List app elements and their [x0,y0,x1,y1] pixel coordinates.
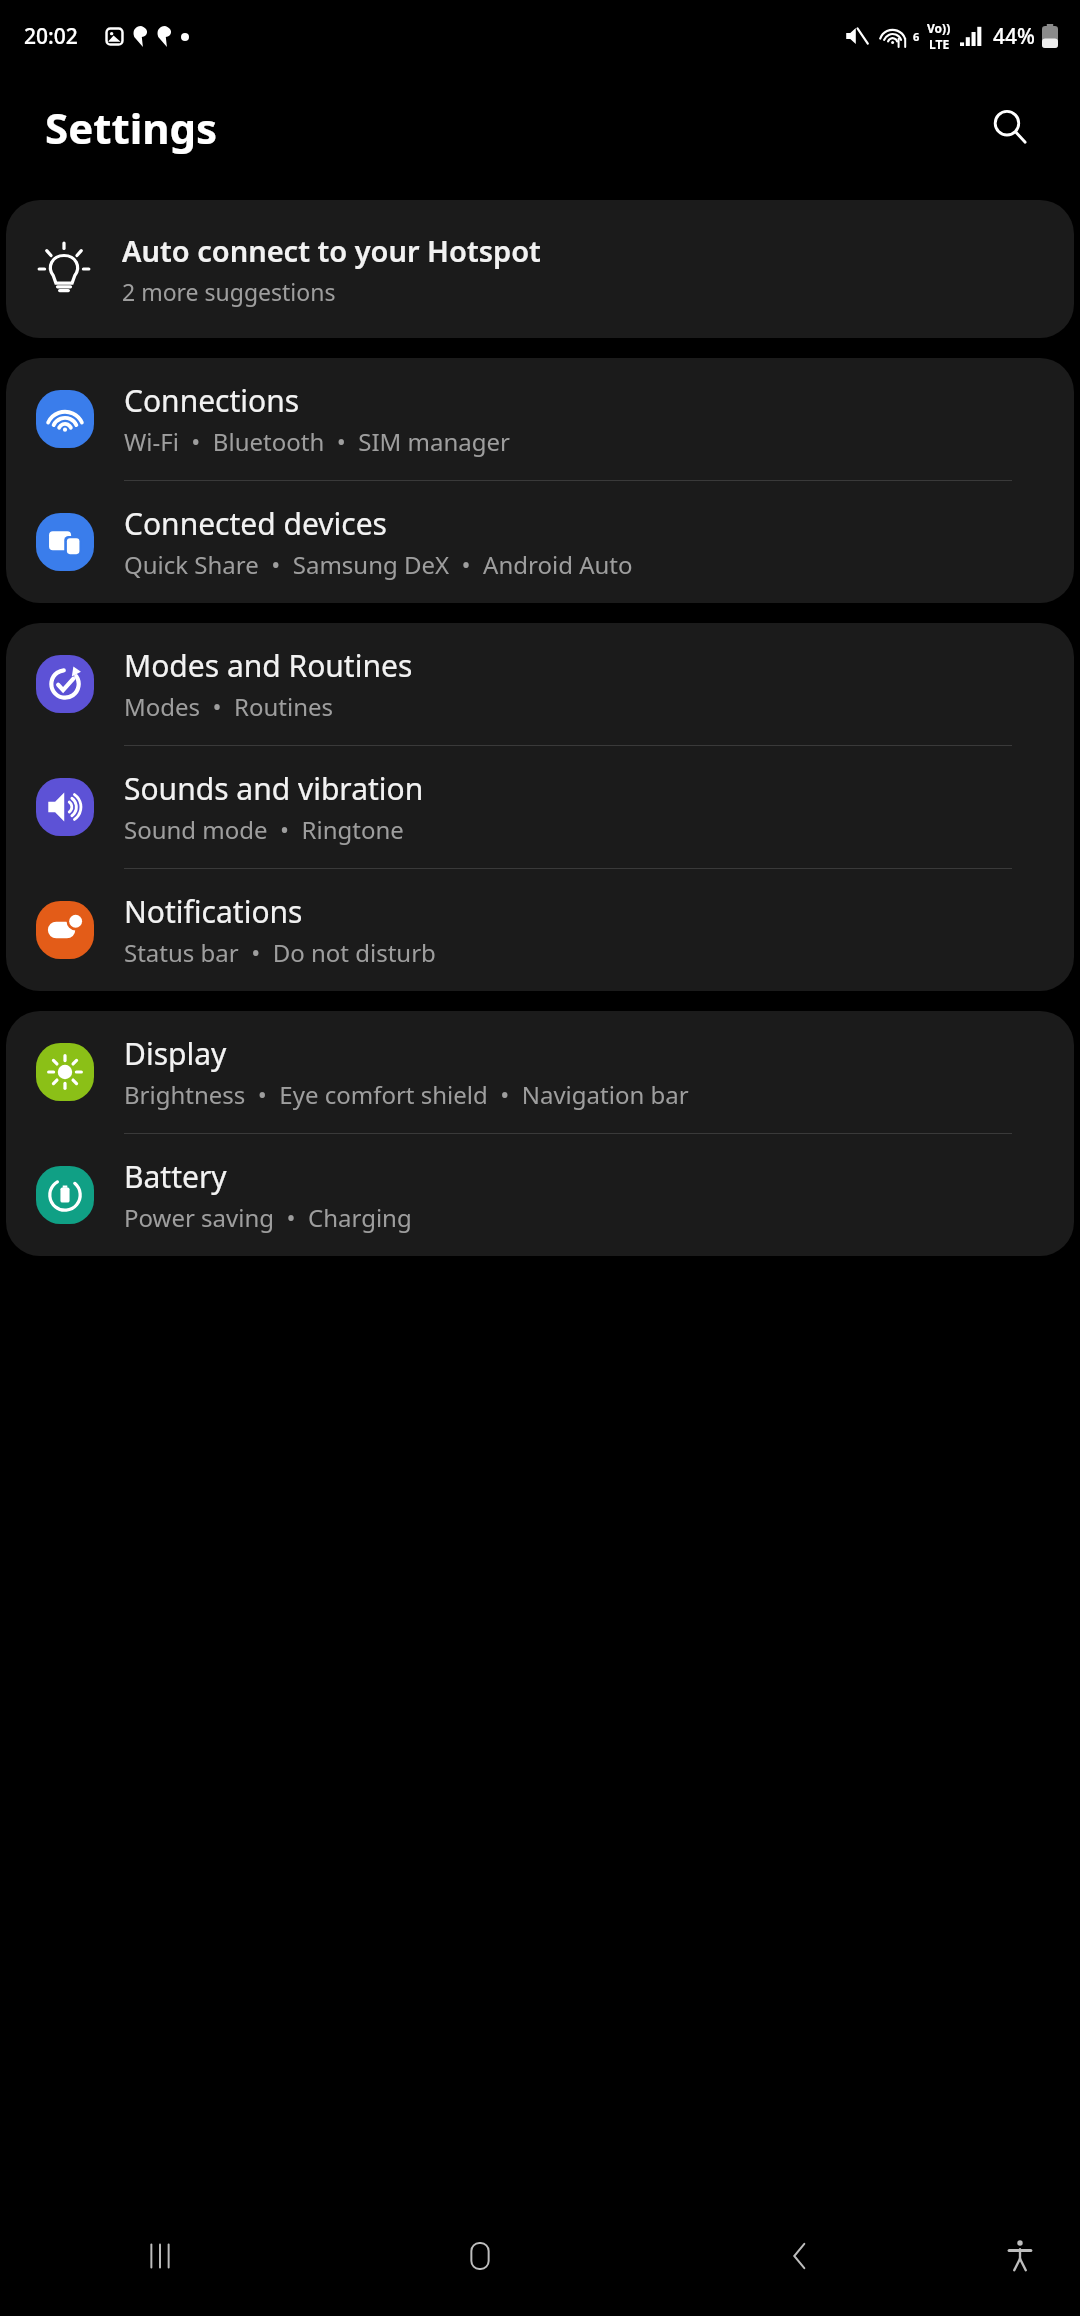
button[interactable]: Notifications [6,869,1074,991]
staticText: Battery [124,1156,227,1197]
button[interactable]: Sounds and vibration [6,746,1074,868]
staticText: Connections [124,380,300,421]
staticText: Connected devices [124,503,387,544]
button[interactable]: Accessibility [960,2196,1080,2316]
button[interactable]: Home [320,2196,640,2316]
button[interactable]: Display [6,1011,1074,1133]
staticText: 20:02 [24,22,78,51]
button[interactable]: Back [640,2196,960,2316]
staticText: Settings [45,99,218,156]
staticText: 2 more suggestions [122,276,336,307]
staticText: Brightness • Eye comfort shield • Naviga… [124,1078,689,1111]
staticText: Status bar • Do not disturb [124,936,436,969]
staticText: Sounds and vibration [124,768,424,809]
button[interactable]: Auto connect to your Hotspot [6,200,1074,338]
staticText: Modes • Routines [124,690,334,723]
staticText: Quick Share • Samsung DeX • Android Auto [124,548,633,581]
button[interactable]: Connected devices [6,481,1074,603]
staticText: Modes and Routines [124,645,413,686]
button[interactable]: Connections [6,358,1074,480]
staticText: Wi-Fi • Bluetooth • SIM manager [124,425,510,458]
staticText: LTE [929,36,950,52]
staticText: Sound mode • Ringtone [124,813,404,846]
staticText: Notifications [124,891,303,932]
staticText: 44% [993,22,1035,51]
button[interactable]: Battery [6,1134,1074,1256]
staticText: 6 [913,29,920,44]
button[interactable]: Modes and Routines [6,623,1074,745]
button[interactable]: Recents [0,2196,320,2316]
staticText: Vo)) [927,20,951,36]
staticText: Auto connect to your Hotspot [122,231,541,270]
button[interactable]: Search [978,95,1042,159]
staticText: Power saving • Charging [124,1201,412,1234]
staticText: Display [124,1033,227,1074]
